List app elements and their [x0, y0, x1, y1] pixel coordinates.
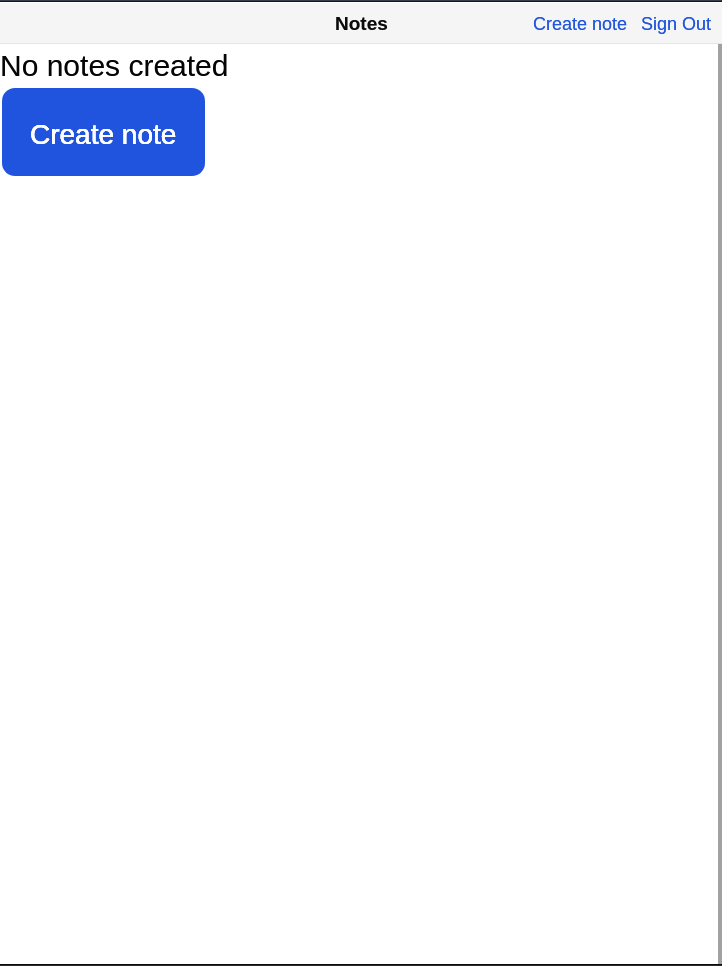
button[interactable]: Sign Out — [641, 3, 712, 44]
button[interactable]: Create note — [533, 3, 628, 44]
staticText: Notes — [335, 13, 388, 34]
staticText: Sign Out — [641, 14, 712, 34]
staticText: Notes — [335, 13, 388, 34]
staticText: Create note — [30, 119, 177, 150]
staticText: No notes created — [0, 49, 229, 83]
staticText: Create note — [533, 14, 628, 34]
staticText: Sign Out — [641, 14, 712, 34]
staticText: No notes created — [0, 49, 229, 83]
staticText: Create note — [30, 119, 177, 150]
staticText: Create note — [533, 14, 628, 34]
button[interactable]: Create note — [2, 88, 205, 176]
